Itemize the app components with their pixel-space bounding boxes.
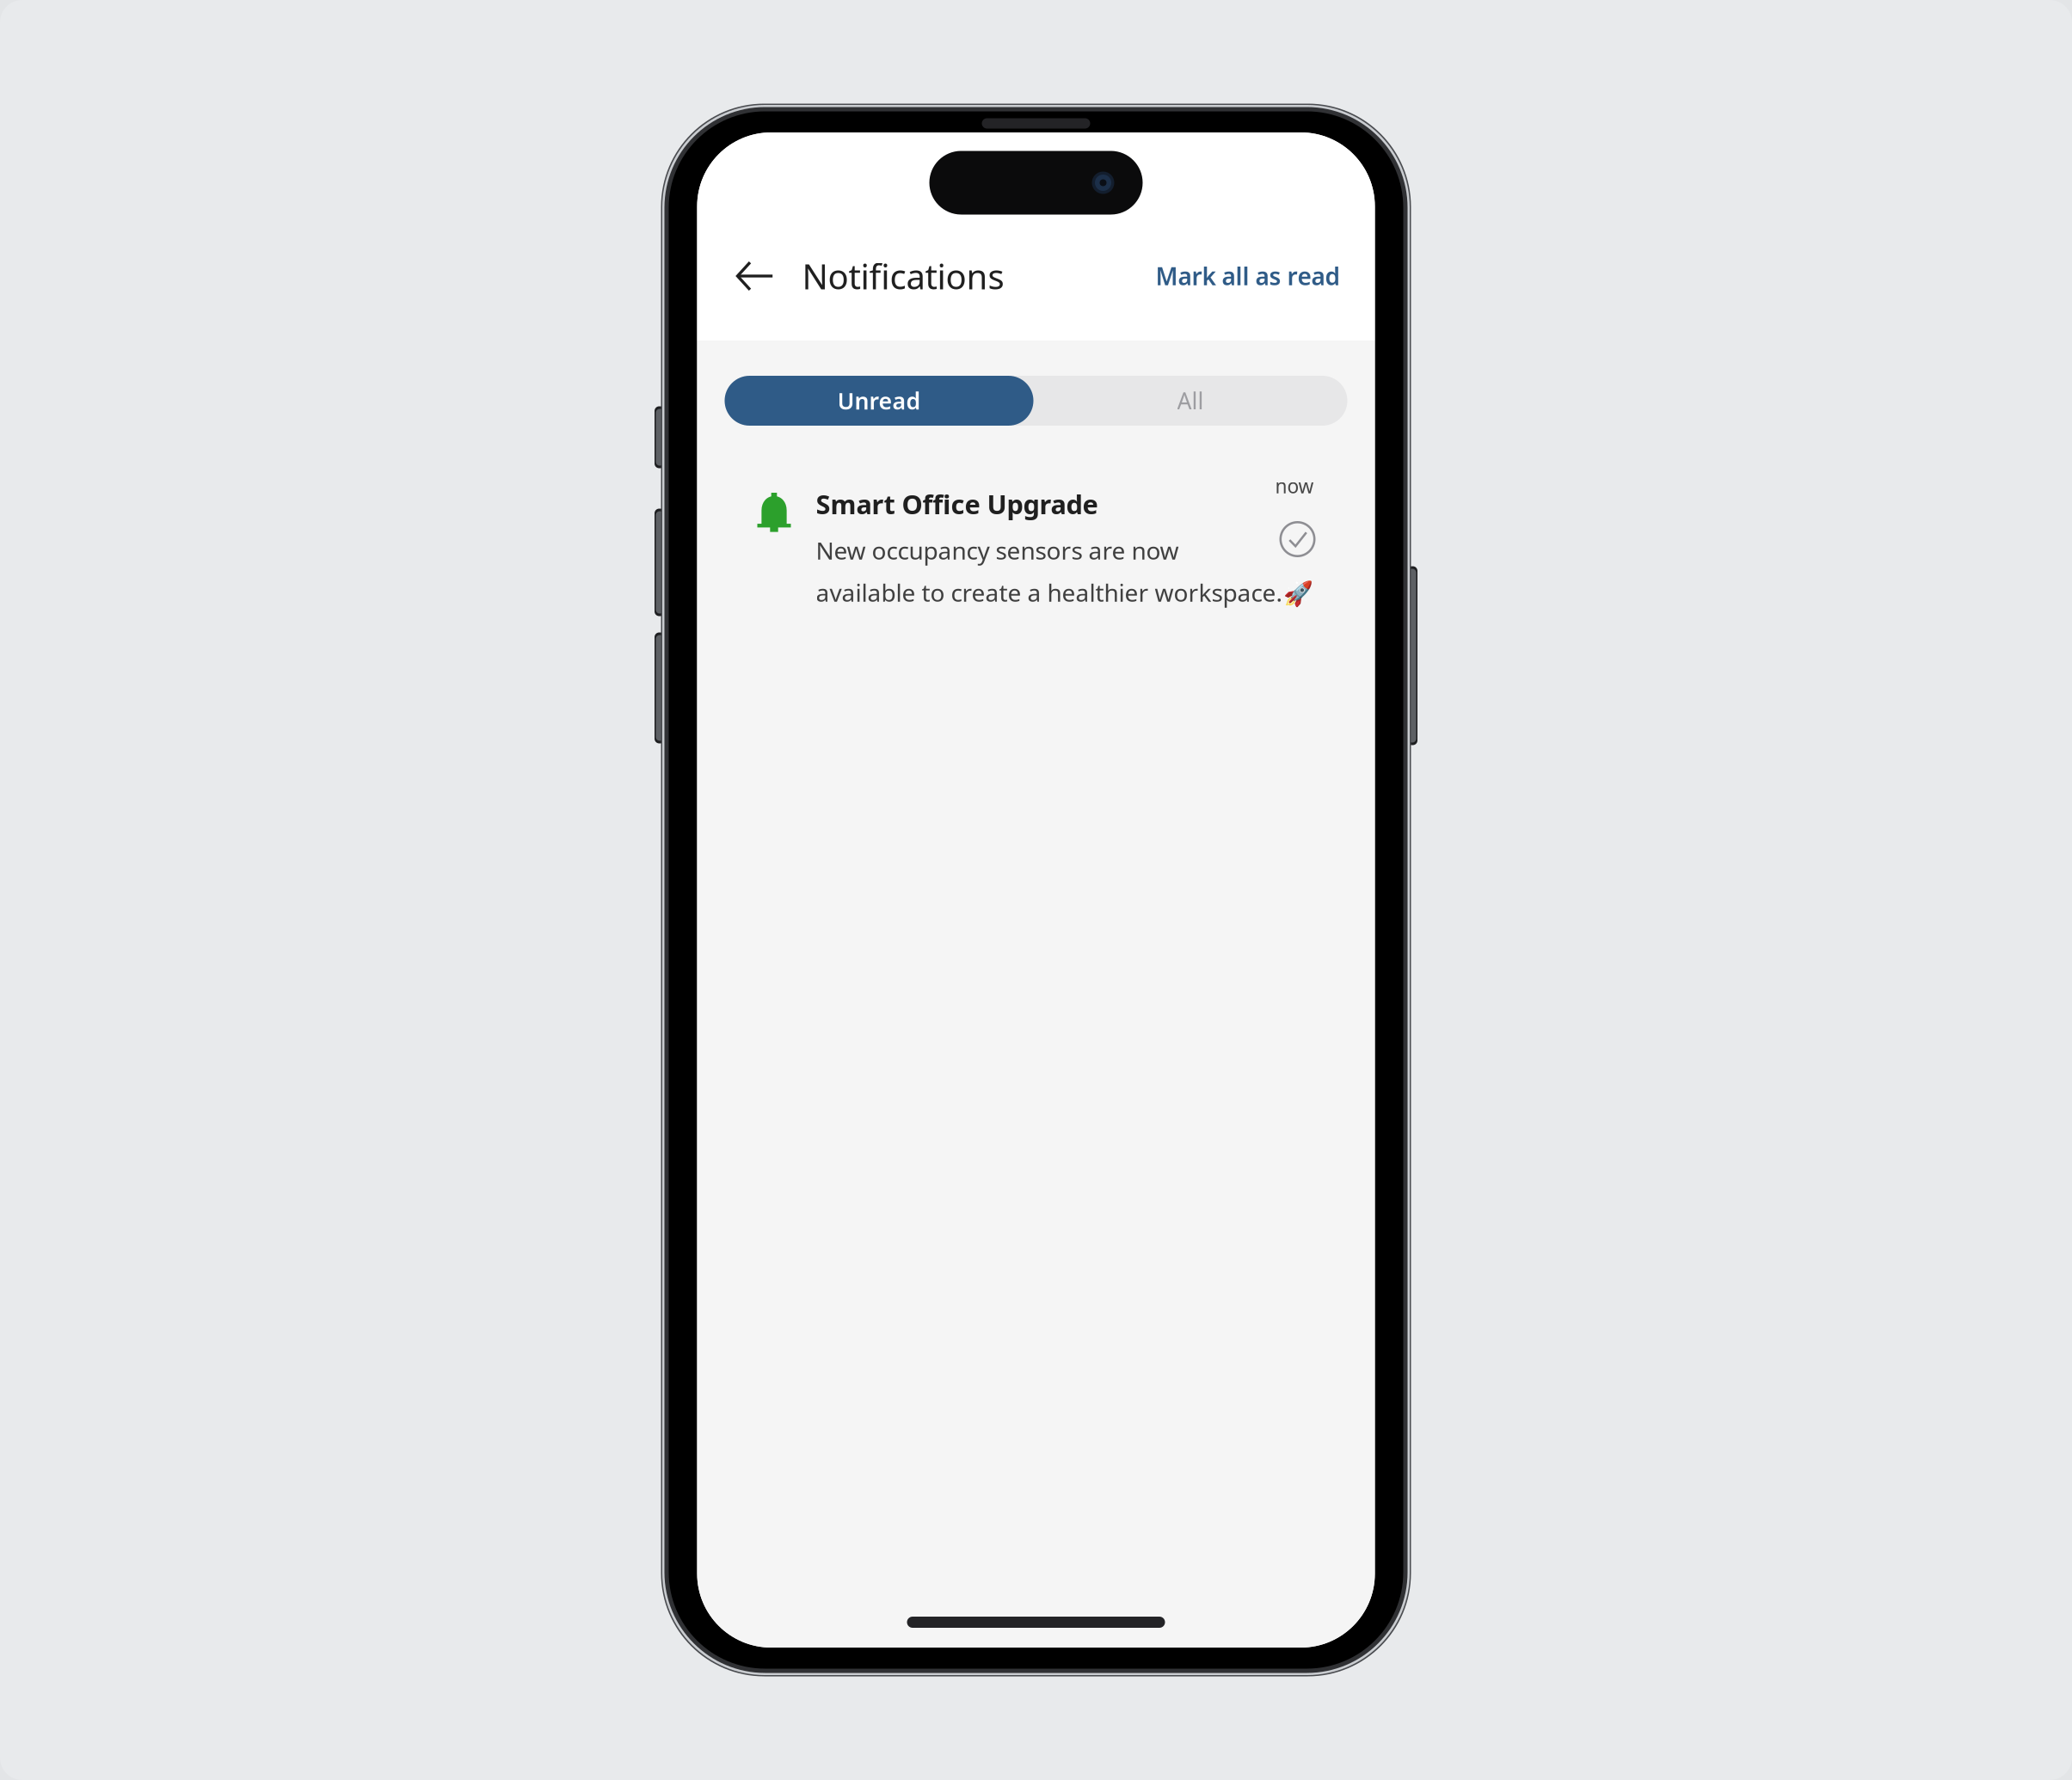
button[interactable]: All [1033, 376, 1347, 426]
staticText: All [1177, 385, 1204, 416]
button[interactable]: Unread [725, 376, 1033, 426]
button[interactable]: Back [730, 246, 780, 306]
button[interactable]: Smart Office Upgrade [697, 461, 1375, 633]
button[interactable]: Mark all as read [1155, 246, 1340, 306]
staticText: available to create a healthier workspac… [816, 576, 1313, 608]
staticText: now [1275, 473, 1314, 499]
staticText: Notifications [802, 253, 1004, 299]
staticText: New occupancy sensors are now [816, 534, 1179, 566]
staticText: Mark all as read [1156, 260, 1340, 292]
staticText: Smart Office Upgrade [816, 486, 1098, 521]
staticText: Unread [837, 385, 921, 416]
